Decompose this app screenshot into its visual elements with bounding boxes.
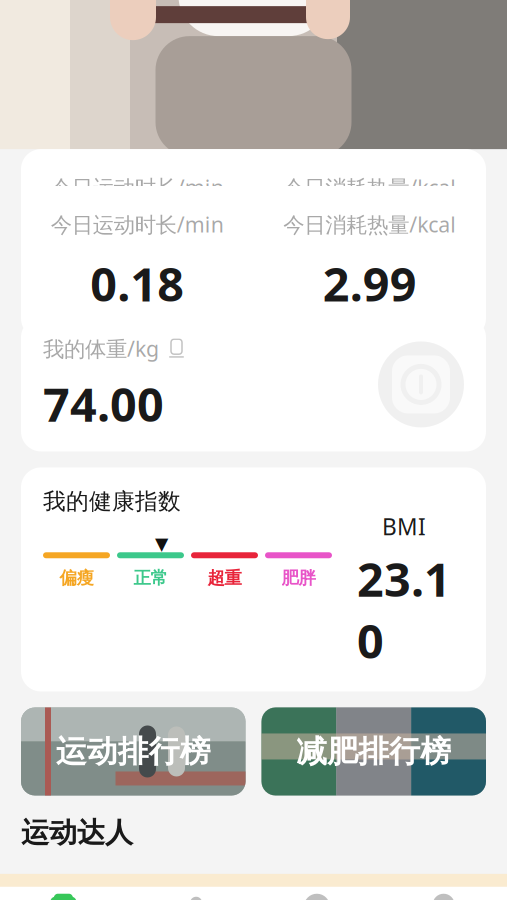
staticText: 今日消耗热量/kcal (283, 210, 456, 238)
staticText: 肥胖 (281, 567, 315, 589)
button[interactable]: 社区 (253, 886, 380, 900)
staticText: 减肥排行榜 (296, 733, 451, 770)
button[interactable]: 首页 (0, 886, 127, 900)
staticText: 74.00 (43, 373, 164, 435)
staticText: 我的体重/kg (43, 334, 159, 363)
staticText: 今日运动时长/min (51, 173, 224, 201)
staticText: 我的健康指数 (43, 487, 181, 515)
button[interactable]: 运动 (127, 886, 254, 900)
button[interactable]: 我的体重/kg (43, 334, 184, 363)
button[interactable]: 我的 (380, 886, 507, 900)
staticText: 运动达人 (21, 815, 133, 850)
button[interactable]: 运动排行榜 (21, 707, 245, 795)
staticText: 超重 (207, 567, 241, 589)
staticText: 今日运动时长/min (51, 210, 224, 238)
staticText: 2.99 (323, 215, 417, 277)
staticText: 运动排行榜 (56, 733, 211, 770)
staticText: 0.18 (90, 215, 184, 277)
staticText: 正常 (133, 567, 167, 589)
staticText: 2.99 (323, 252, 417, 314)
staticText: 23.10 (357, 547, 451, 671)
staticText: 今日消耗热量/kcal (283, 173, 456, 201)
staticText: 0.18 (90, 252, 184, 314)
staticText: ▼ (155, 534, 168, 554)
button[interactable]: 减肥排行榜 (261, 707, 486, 795)
staticText: BMI (382, 511, 426, 541)
staticText: 偏瘦 (59, 567, 93, 589)
